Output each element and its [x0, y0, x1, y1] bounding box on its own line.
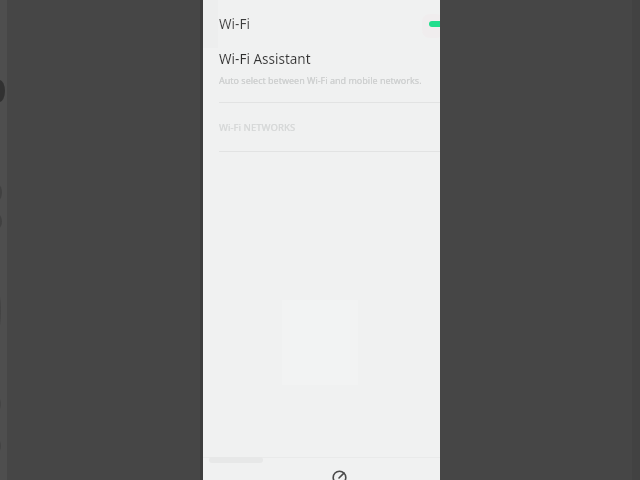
button[interactable]: Wi-Fi: [203, 10, 440, 42]
button[interactable]: [330, 468, 350, 480]
staticText: Wi-Fi: [219, 15, 250, 33]
staticText: Auto select between Wi-Fi and mobile net…: [219, 74, 422, 86]
button[interactable]: Wi-Fi Assistant: [203, 50, 440, 95]
staticText: Wi-Fi NETWORKS: [219, 121, 296, 134]
staticText: Wi-Fi Assistant: [219, 50, 311, 68]
button[interactable]: [429, 21, 440, 27]
